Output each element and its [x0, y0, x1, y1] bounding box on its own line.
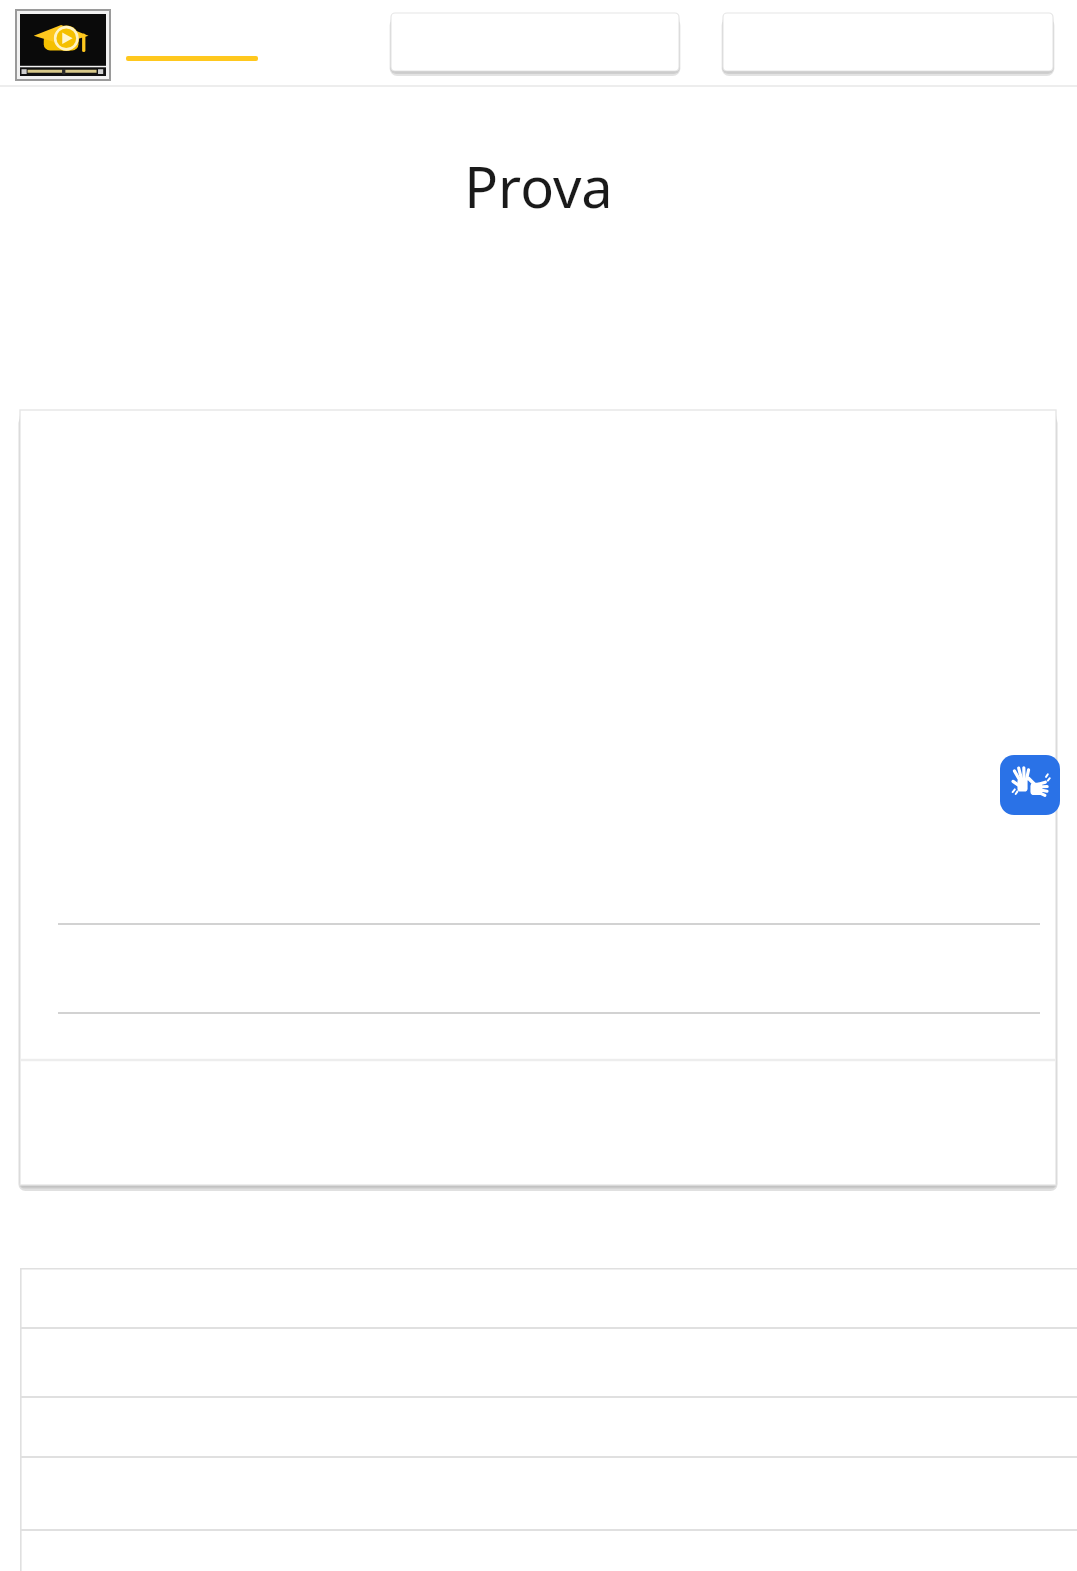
button[interactable]: [20, 1328, 1077, 1397]
button[interactable]: [20, 1268, 1077, 1328]
button[interactable]: [20, 1397, 1077, 1457]
button[interactable]: Sign language accessibility: [1000, 755, 1060, 815]
button[interactable]: [20, 1457, 1077, 1530]
button[interactable]: [20, 1530, 1077, 1571]
button[interactable]: Home: [16, 10, 110, 80]
staticText: Prova: [0, 148, 1077, 224]
